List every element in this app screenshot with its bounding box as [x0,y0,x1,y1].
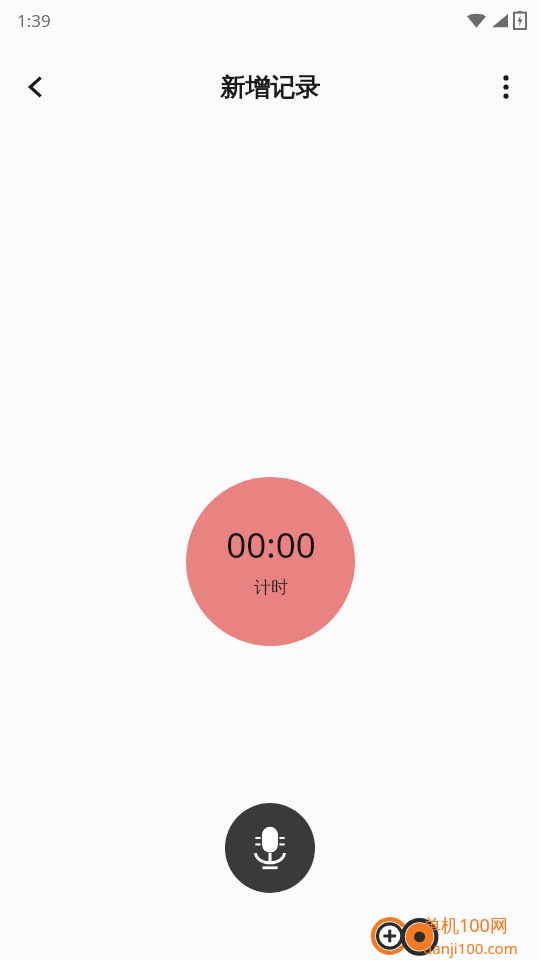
staticText: 单机100网 [423,913,508,938]
staticText: 计时 [254,577,288,598]
button[interactable]: Record voice [225,803,315,893]
staticText: 新增记录 [220,72,320,103]
button[interactable]: Back [8,59,64,115]
staticText: 00:00 [226,521,316,569]
staticText: danji100.com [423,938,518,958]
button[interactable]: More options [479,60,533,114]
staticText: 1:39 [17,9,51,32]
button[interactable]: 00:00 [186,477,355,646]
